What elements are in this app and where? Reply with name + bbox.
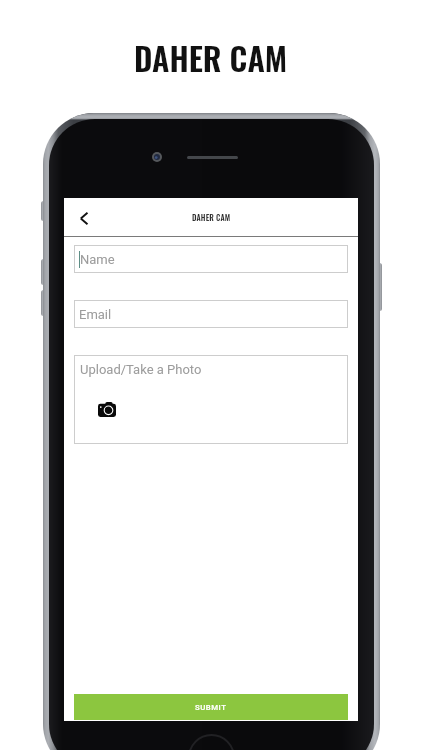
button[interactable]: SUBMIT (74, 694, 348, 720)
staticText: Upload/Take a Photo (80, 362, 202, 377)
staticText: SUBMIT (195, 703, 227, 712)
staticText: Email (79, 307, 112, 322)
staticText: Name (80, 252, 115, 267)
staticText: DAHER CAM (192, 212, 231, 224)
staticText: DAHER CAM (134, 34, 288, 82)
button[interactable]: Upload or take a photo (74, 355, 348, 444)
button[interactable]: Email (74, 300, 348, 328)
button[interactable]: Back (68, 202, 100, 234)
button[interactable]: Name (74, 245, 348, 273)
